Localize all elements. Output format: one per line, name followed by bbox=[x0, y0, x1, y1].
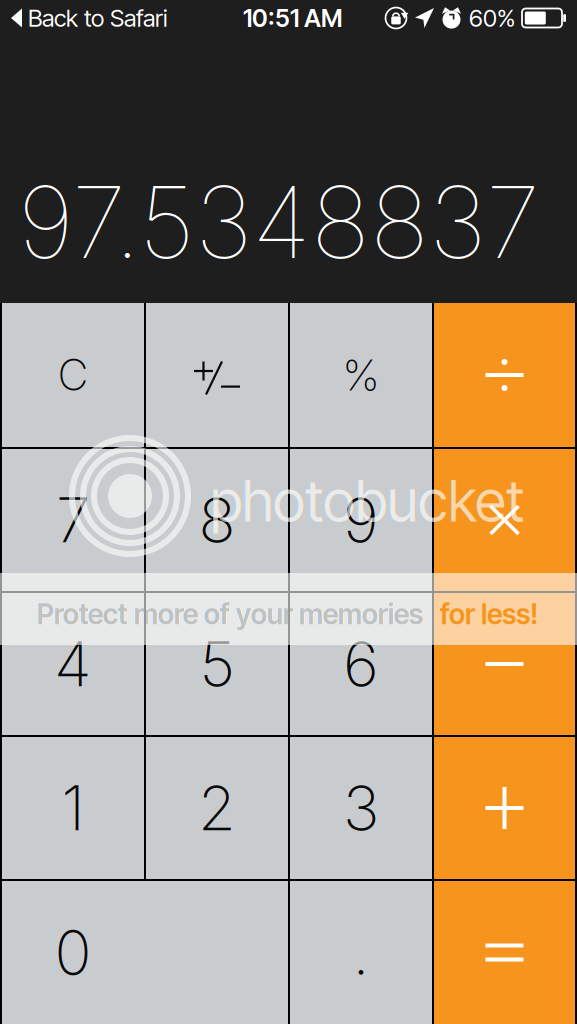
button[interactable]: 1 bbox=[2, 737, 144, 879]
button[interactable]: 5 bbox=[146, 593, 288, 735]
staticText: 0 bbox=[54, 915, 91, 990]
staticText: 6 bbox=[343, 627, 379, 701]
button[interactable]: Decimal point bbox=[290, 881, 432, 1024]
staticText: Protect more of your memories bbox=[37, 597, 423, 631]
button[interactable]: Add bbox=[434, 737, 575, 879]
staticText: 3 bbox=[343, 771, 379, 845]
button[interactable]: 8 bbox=[146, 449, 288, 591]
button[interactable]: Zero bbox=[2, 881, 288, 1024]
button[interactable]: Plus minus bbox=[146, 303, 288, 447]
staticText: 97.5348837 bbox=[18, 162, 540, 282]
staticText: 60% bbox=[469, 3, 515, 32]
button[interactable]: 9 bbox=[290, 449, 432, 591]
button[interactable]: Back to Safari bbox=[11, 1, 168, 35]
staticText: 5 bbox=[199, 627, 234, 701]
button[interactable]: Divide bbox=[434, 303, 575, 447]
button[interactable]: 7 bbox=[2, 449, 144, 591]
staticText: 10:51 AM bbox=[243, 3, 342, 33]
staticText: C bbox=[57, 349, 88, 401]
staticText: 9 bbox=[343, 483, 379, 557]
button[interactable]: Clear bbox=[2, 303, 144, 447]
button[interactable]: Equals bbox=[434, 881, 575, 1024]
button[interactable]: Percent bbox=[290, 303, 432, 447]
staticText: Back to Safari bbox=[28, 3, 168, 32]
button[interactable]: 3 bbox=[290, 737, 432, 879]
staticText: photobucket bbox=[210, 466, 524, 535]
button[interactable]: 2 bbox=[146, 737, 288, 879]
staticText: for less! bbox=[440, 597, 538, 631]
staticText: 2 bbox=[198, 771, 236, 845]
button[interactable]: Subtract bbox=[434, 593, 575, 735]
staticText: . bbox=[352, 915, 369, 990]
staticText: % bbox=[342, 349, 380, 401]
staticText: 1 bbox=[61, 771, 84, 845]
staticText: 8 bbox=[198, 483, 235, 557]
button[interactable]: Multiply bbox=[434, 449, 575, 591]
staticText: 7 bbox=[56, 483, 90, 557]
button[interactable]: 4 bbox=[2, 593, 144, 735]
staticText: 4 bbox=[54, 627, 92, 701]
button[interactable]: 6 bbox=[290, 593, 432, 735]
